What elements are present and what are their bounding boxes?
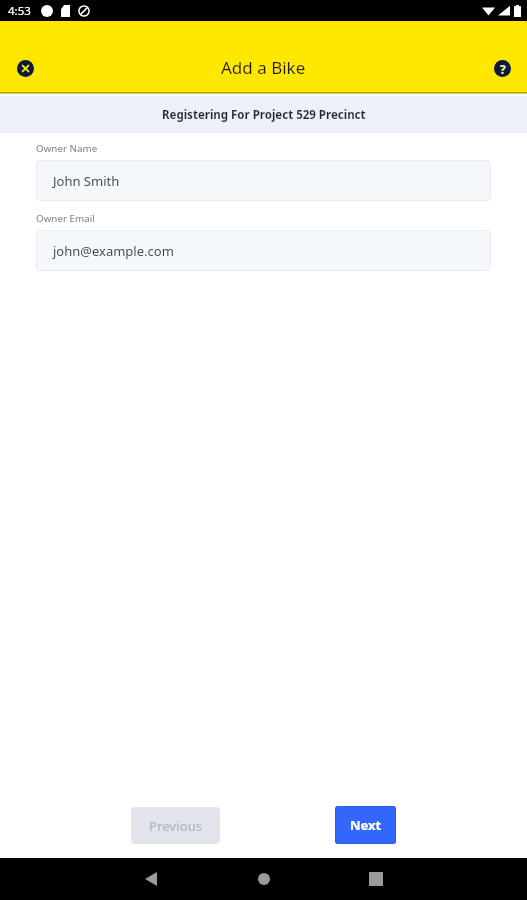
button[interactable]: Home [201, 858, 326, 900]
staticText: ? [500, 61, 506, 77]
staticText: Owner Email [36, 212, 95, 225]
staticText: Registering For Project 529 Precinct [162, 107, 366, 123]
button[interactable]: Back [101, 858, 201, 900]
staticText: john@example.com [53, 242, 174, 260]
staticText: Previous [149, 817, 203, 835]
button[interactable]: Next [335, 806, 396, 844]
button[interactable]: Previous [131, 807, 220, 844]
staticText: John Smith [53, 172, 120, 190]
button[interactable]: Recent apps [326, 858, 426, 900]
staticText: Owner Name [36, 142, 98, 155]
button[interactable]: Close [8, 51, 42, 85]
button[interactable]: john@example.com [36, 230, 491, 271]
button[interactable]: John Smith [36, 160, 491, 201]
button[interactable]: Help [485, 51, 519, 85]
staticText: Add a Bike [221, 56, 306, 79]
staticText: Next [350, 816, 382, 834]
staticText: 4:53 [8, 3, 31, 19]
